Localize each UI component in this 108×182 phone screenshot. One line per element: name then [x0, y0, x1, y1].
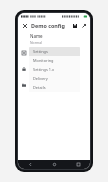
button[interactable]: Security: [20, 65, 27, 72]
button[interactable]: Delivery: [29, 74, 80, 83]
button[interactable]: Home: [42, 160, 66, 169]
button[interactable]: Monitoring: [29, 56, 80, 65]
staticText: Name: [30, 33, 43, 39]
button[interactable]: Close: [20, 21, 29, 30]
button[interactable]: Settings 1.x: [29, 65, 80, 74]
staticText: Normal: [30, 40, 42, 45]
button[interactable]: Recents: [66, 160, 90, 169]
staticText: Monitoring: [33, 58, 54, 63]
staticText: Settings 1.x: [33, 67, 55, 72]
staticText: Delivery: [33, 76, 48, 81]
staticText: Basic info: [30, 51, 52, 57]
staticText: Details: [33, 85, 46, 90]
button[interactable]: Save: [70, 21, 79, 30]
button[interactable]: List: [20, 49, 27, 56]
button[interactable]: Details: [29, 83, 80, 92]
button[interactable]: Back: [18, 160, 42, 169]
button[interactable]: Expand: [79, 21, 88, 30]
button[interactable]: Files: [20, 81, 27, 88]
staticText: Settings: [33, 49, 48, 54]
staticText: Demo config: [31, 22, 65, 29]
button[interactable]: Settings: [29, 47, 80, 56]
